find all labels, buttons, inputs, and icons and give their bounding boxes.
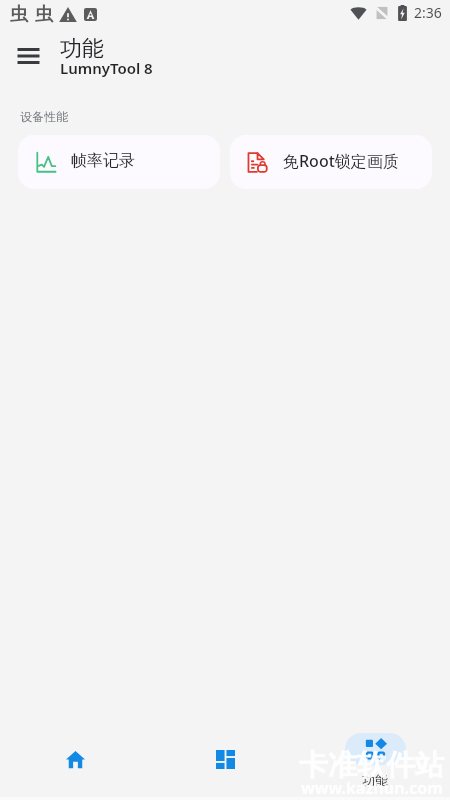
staticText: 功能 (60, 35, 104, 63)
staticText: 2:36 (414, 3, 442, 22)
staticText: 设备性能 (20, 109, 68, 124)
button[interactable]: Features (300, 725, 450, 792)
staticText: www.kazhun.com (301, 777, 443, 799)
staticText: 卡准软件站 (299, 747, 444, 784)
button[interactable]: 帧率记录 (18, 135, 220, 189)
button[interactable]: Menu (0, 28, 56, 86)
staticText: 功能 (362, 772, 388, 788)
staticText: 虫 (10, 3, 28, 26)
staticText: 帧率记录 (71, 151, 135, 171)
staticText: LumnyTool 8 (60, 58, 153, 78)
button[interactable]: 免Root锁定画质 (230, 135, 432, 189)
staticText: 免Root锁定画质 (283, 150, 399, 172)
button[interactable]: Home (0, 725, 150, 792)
staticText: 虫 (35, 3, 53, 26)
button[interactable]: Dashboard (150, 725, 300, 792)
